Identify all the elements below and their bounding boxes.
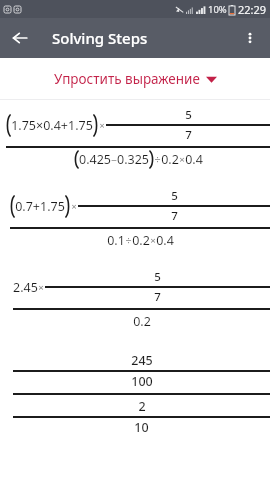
staticText: 0.425 bbox=[79, 151, 111, 168]
staticText: × bbox=[71, 200, 77, 212]
button[interactable]: More options bbox=[230, 18, 270, 58]
staticText: 22:29 bbox=[238, 2, 267, 17]
staticText: × bbox=[150, 234, 156, 247]
staticText: 10% bbox=[208, 3, 227, 16]
staticText: 5 bbox=[154, 269, 161, 285]
staticText: 0.325 bbox=[117, 151, 149, 168]
staticText: 2.45 bbox=[13, 279, 38, 296]
staticText: Solving Steps bbox=[52, 28, 148, 48]
staticText: ÷ bbox=[125, 234, 132, 248]
staticText: 100 bbox=[131, 373, 153, 390]
staticText: 0.4 bbox=[185, 151, 203, 168]
staticText: × bbox=[179, 153, 185, 166]
button[interactable]: Back bbox=[0, 18, 40, 58]
staticText: 0.2 bbox=[133, 313, 151, 330]
staticText: × bbox=[38, 281, 44, 294]
staticText: 0.2 bbox=[132, 232, 150, 249]
button[interactable]: 1.75×0.4+1.75 bbox=[6, 107, 270, 168]
staticText: 0.1 bbox=[107, 232, 125, 249]
button[interactable]: 2.45 bbox=[13, 269, 270, 330]
staticText: 7 bbox=[154, 289, 161, 305]
staticText: 7 bbox=[185, 127, 192, 143]
staticText: ÷ bbox=[154, 153, 161, 167]
staticText: 1.75×0.4+1.75 bbox=[11, 117, 93, 134]
staticText: 0.7+1.75 bbox=[15, 198, 65, 215]
staticText: 0.4 bbox=[156, 232, 174, 249]
staticText: − bbox=[111, 153, 117, 167]
button[interactable]: 245 bbox=[13, 352, 270, 436]
staticText: 5 bbox=[171, 188, 178, 204]
button[interactable]: 0.7+1.75 bbox=[10, 188, 270, 249]
staticText: 0.2 bbox=[161, 151, 179, 168]
staticText: 5 bbox=[185, 107, 192, 123]
button[interactable]: Упростить выражение bbox=[46, 64, 225, 94]
staticText: 10 bbox=[134, 419, 149, 436]
staticText: 2 bbox=[138, 398, 146, 415]
staticText: × bbox=[99, 119, 105, 131]
staticText: 7 bbox=[171, 208, 178, 224]
staticText: Упростить выражение bbox=[54, 70, 200, 88]
staticText: 245 bbox=[131, 352, 153, 369]
